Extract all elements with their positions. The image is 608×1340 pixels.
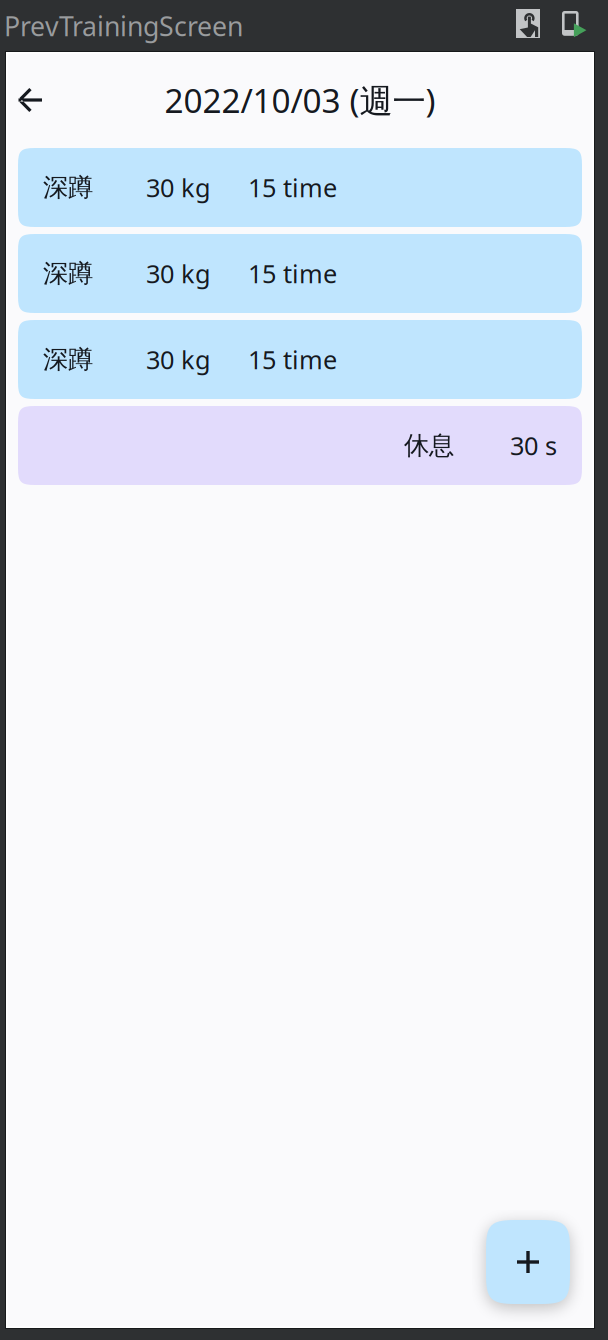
staticText: 深蹲 (43, 258, 93, 289)
button[interactable]: Run (562, 0, 588, 52)
staticText: 15 time (248, 257, 337, 290)
staticText: 15 time (248, 343, 337, 376)
staticText: PrevTrainingScreen (4, 8, 243, 44)
button[interactable]: 深蹲 (18, 320, 582, 399)
button[interactable]: Add set (486, 1220, 570, 1304)
staticText: 30 kg (146, 257, 211, 290)
staticText: 15 time (248, 171, 337, 204)
staticText: 30 s (510, 429, 557, 462)
button[interactable]: 休息 (18, 406, 582, 485)
staticText: 深蹲 (43, 344, 93, 375)
staticText: 2022/10/03 (週一) (164, 78, 435, 122)
button[interactable]: 深蹲 (18, 234, 582, 313)
button[interactable]: Back (6, 52, 54, 148)
button[interactable]: 深蹲 (18, 148, 582, 227)
staticText: 深蹲 (43, 172, 93, 203)
staticText: 30 kg (146, 343, 211, 376)
staticText: 30 kg (146, 171, 211, 204)
staticText: 休息 (404, 430, 454, 461)
button[interactable]: Select widget mode (516, 0, 540, 52)
